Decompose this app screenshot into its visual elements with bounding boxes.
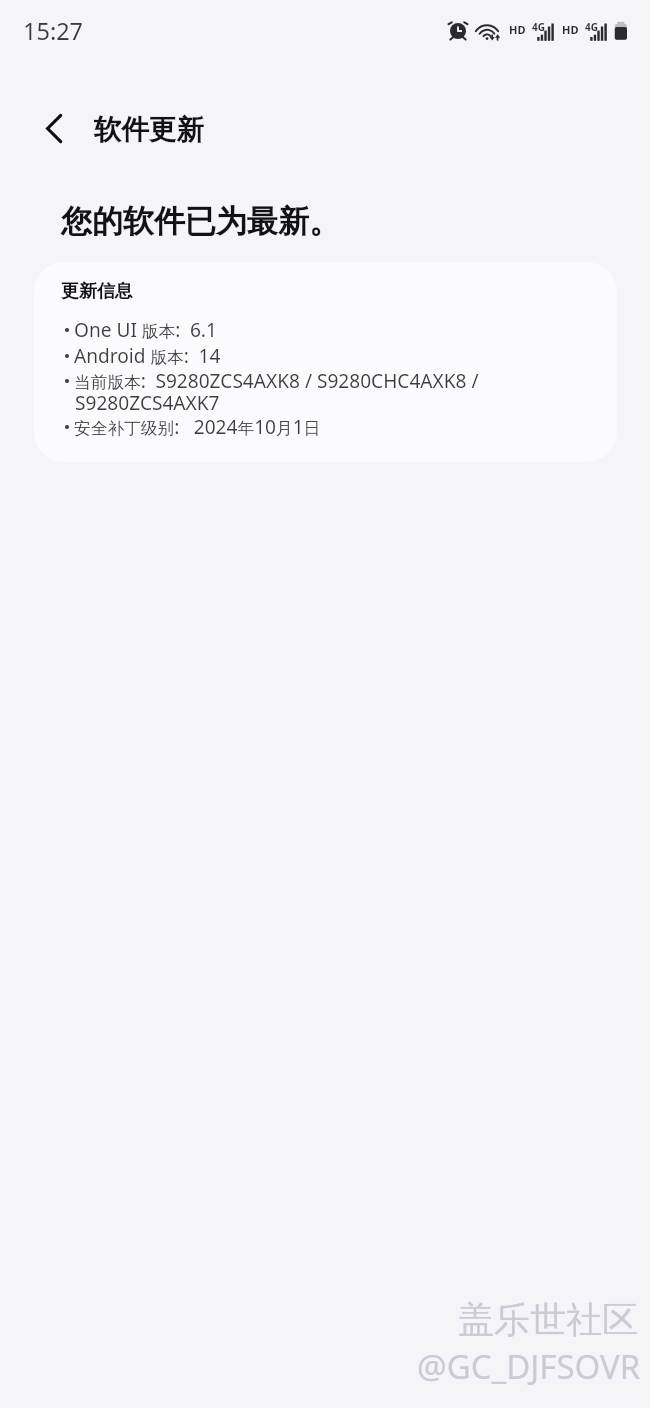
staticText: One UI 版本: 6.1 <box>74 317 217 343</box>
staticText: 盖乐世社区 <box>458 1297 638 1342</box>
staticText: 更新信息 <box>61 280 133 303</box>
staticText: 您的软件已为最新。 <box>61 202 340 241</box>
staticText: Android 版本: 14 <box>74 343 221 369</box>
staticText: HD <box>509 22 526 37</box>
staticText: S9280ZCS4AXK7 <box>75 390 220 416</box>
button[interactable]: Back <box>31 107 77 153</box>
staticText: 当前版本: S9280ZCS4AXK8 / S9280CHC4AXK8 / <box>74 368 479 394</box>
staticText: 安全补丁级别: 2024年10月1日 <box>74 414 321 440</box>
staticText: 软件更新 <box>94 113 204 148</box>
staticText: 15:27 <box>23 15 84 47</box>
staticText: 4G <box>585 20 598 34</box>
staticText: HD <box>562 22 579 37</box>
staticText: @GC_DJFSOVR <box>417 1344 641 1389</box>
staticText: 4G <box>532 20 545 34</box>
